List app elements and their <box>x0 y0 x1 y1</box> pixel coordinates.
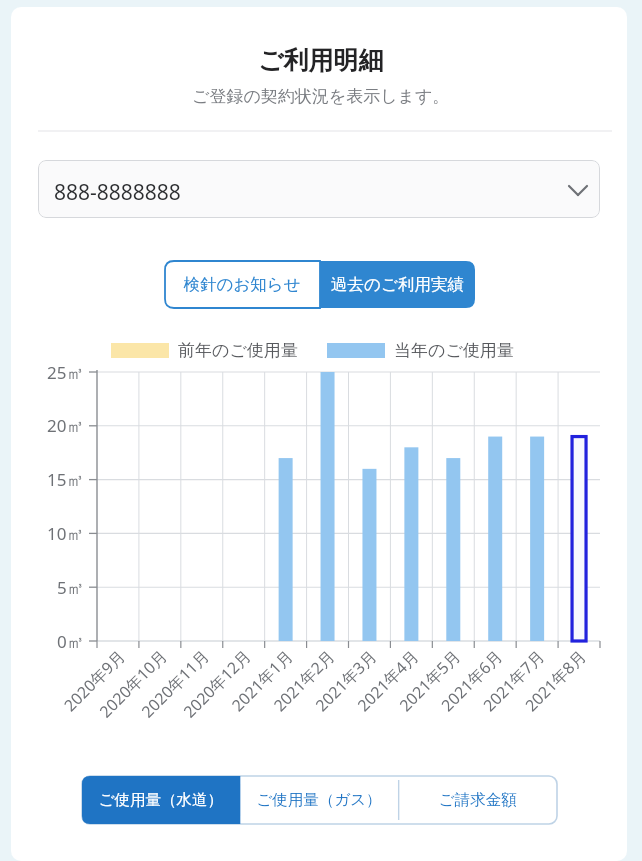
button[interactable] <box>320 261 475 308</box>
button[interactable] <box>82 776 240 824</box>
button[interactable] <box>398 776 557 824</box>
button[interactable] <box>240 776 398 824</box>
button[interactable] <box>165 261 320 308</box>
button[interactable] <box>38 160 600 218</box>
